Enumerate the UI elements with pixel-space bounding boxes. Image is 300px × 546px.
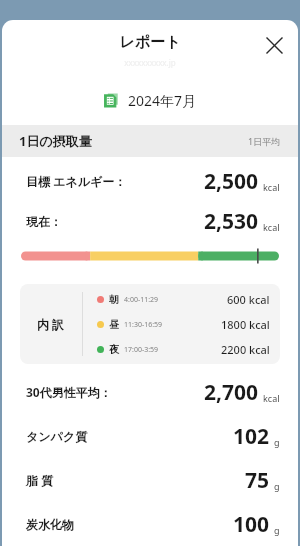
- staticText: kcal: [263, 392, 280, 404]
- staticText: 30代男性平均：: [26, 384, 112, 400]
- staticText: 1800 kcal: [221, 317, 270, 332]
- staticText: 脂 質: [26, 472, 54, 488]
- staticText: 17:00-3:59: [124, 345, 159, 355]
- staticText: kcal: [263, 221, 280, 233]
- staticText: 1日の摂取量: [19, 132, 92, 150]
- button[interactable]: 脂 質: [2, 466, 298, 494]
- staticText: kcal: [263, 181, 280, 193]
- staticText: 2,530: [204, 207, 259, 235]
- button[interactable]: タンパク質: [2, 422, 298, 450]
- staticText: 2024年7月: [128, 91, 197, 110]
- staticText: レポート: [119, 33, 181, 52]
- staticText: g: [274, 480, 280, 492]
- staticText: 内 訳: [37, 316, 65, 332]
- button[interactable]: 目標 エネルギー：: [2, 167, 298, 195]
- staticText: g: [274, 524, 280, 536]
- button[interactable]: 現在：: [2, 207, 298, 235]
- staticText: g: [274, 436, 280, 448]
- staticText: xxxxxxxxxx.jp: [124, 57, 176, 68]
- staticText: 11:30-16:59: [124, 320, 163, 330]
- button[interactable]: 炭水化物: [2, 510, 298, 538]
- staticText: 2,500: [204, 167, 259, 195]
- staticText: 600 kcal: [227, 292, 270, 307]
- staticText: 炭水化物: [26, 517, 74, 532]
- staticText: 1日平均: [248, 135, 281, 147]
- button[interactable]: 30代男性平均：: [2, 378, 298, 406]
- button[interactable]: 内 訳: [20, 284, 280, 364]
- staticText: 2,700: [204, 378, 259, 406]
- staticText: 100: [233, 510, 270, 538]
- staticText: 朝: [109, 293, 119, 306]
- staticText: 目標 エネルギー：: [26, 173, 127, 189]
- staticText: 昼: [109, 318, 119, 331]
- staticText: 4:00-11:29: [124, 295, 159, 305]
- staticText: 102: [233, 422, 270, 450]
- staticText: 現在：: [26, 214, 62, 229]
- staticText: 夜: [109, 343, 119, 356]
- button[interactable]: 閉じる: [258, 29, 290, 61]
- staticText: タンパク質: [26, 429, 88, 444]
- staticText: 2200 kcal: [221, 342, 270, 357]
- staticText: 75: [245, 466, 270, 494]
